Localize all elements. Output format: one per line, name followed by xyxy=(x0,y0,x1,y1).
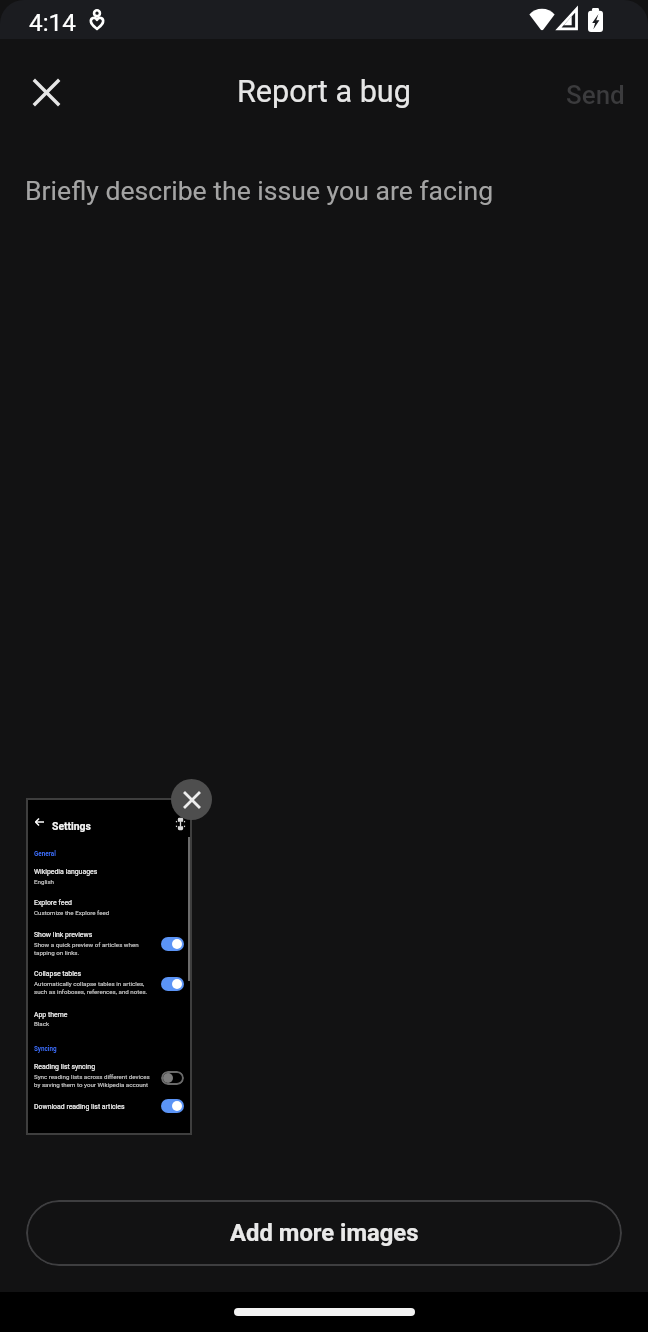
staticText: 4:14 xyxy=(29,8,76,36)
staticText: Add more images xyxy=(230,1219,419,1247)
staticText: Settings xyxy=(52,820,91,832)
staticText: Download reading list articles xyxy=(34,1103,125,1111)
staticText: Syncing xyxy=(34,1045,57,1052)
button[interactable]: Close xyxy=(14,60,78,124)
button[interactable]: Remove image xyxy=(171,779,212,820)
staticText: Customize the Explore feed xyxy=(34,909,110,916)
staticText: Black xyxy=(34,1020,50,1027)
staticText: Briefly describe the issue you are facin… xyxy=(25,175,494,206)
staticText: Send xyxy=(566,80,625,110)
staticText: Report a bug xyxy=(237,74,411,110)
staticText: tapping on links. xyxy=(34,949,80,956)
staticText: Show link previews xyxy=(34,931,93,939)
staticText: such as infoboxes, references, and notes… xyxy=(34,988,148,995)
staticText: Automatically collapse tables in article… xyxy=(34,980,145,987)
staticText: Sync reading lists across different devi… xyxy=(34,1073,150,1080)
staticText: App theme xyxy=(34,1011,68,1019)
button[interactable]: Add more images xyxy=(26,1200,622,1266)
staticText: Reading list syncing xyxy=(34,1063,96,1071)
staticText: Collapse tables xyxy=(34,970,82,978)
button[interactable]: Send xyxy=(553,65,637,125)
button[interactable]: On xyxy=(161,1099,184,1113)
button[interactable]: Settings xyxy=(26,798,192,1135)
button[interactable]: Off xyxy=(161,1071,184,1085)
staticText: English xyxy=(34,878,55,885)
staticText: Explore feed xyxy=(34,899,72,907)
staticText: by saving them to your Wikipedia account xyxy=(34,1081,149,1088)
staticText: Wikipedia languages xyxy=(34,868,98,876)
staticText: Show a quick preview of articles when xyxy=(34,941,139,948)
button[interactable]: On xyxy=(161,937,184,951)
button[interactable]: On xyxy=(161,977,184,991)
staticText: General xyxy=(34,850,56,857)
